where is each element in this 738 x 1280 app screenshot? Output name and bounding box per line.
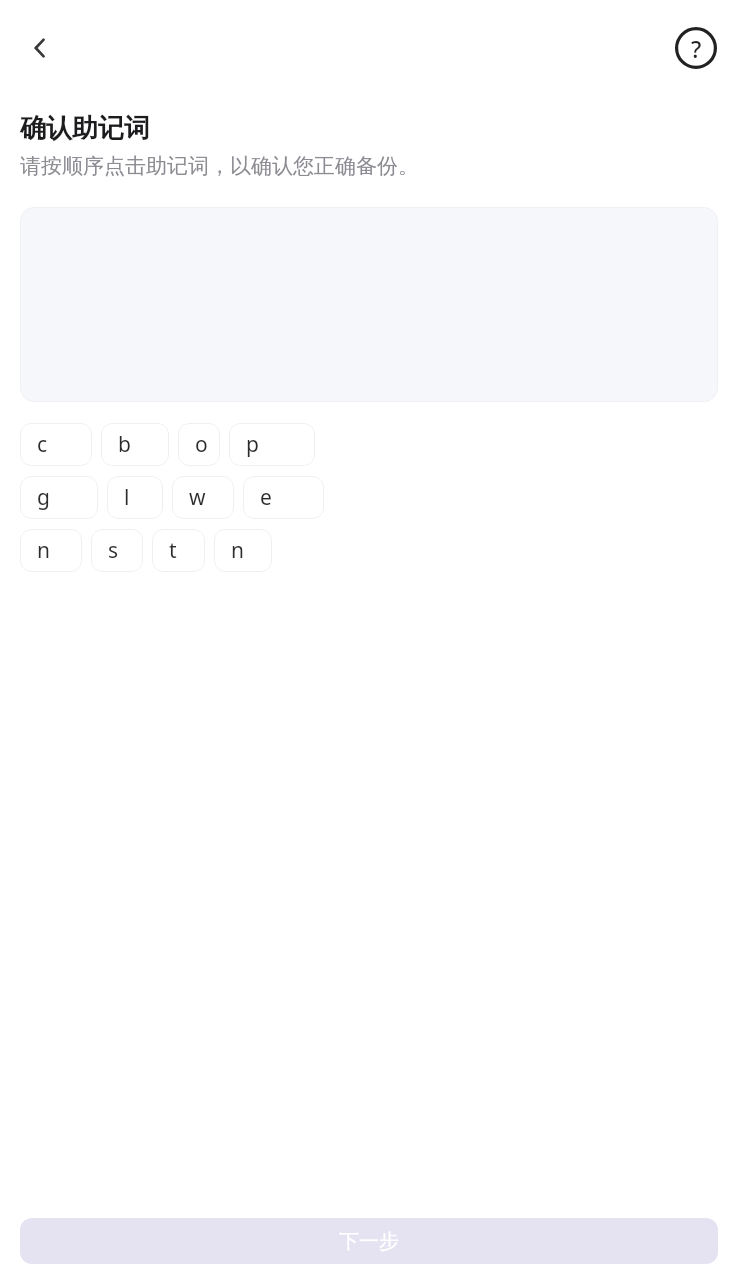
staticText: l [124, 483, 130, 512]
button[interactable]: g [20, 476, 98, 519]
staticText: w [189, 483, 206, 512]
button[interactable]: e [243, 476, 324, 519]
button[interactable]: Help [668, 20, 724, 76]
button[interactable]: l [107, 476, 163, 519]
staticText: n [37, 536, 50, 565]
staticText: t [169, 536, 177, 565]
staticText: 请按顺序点击助记词，以确认您正确备份。 [20, 153, 419, 179]
button[interactable]: s [91, 529, 143, 572]
staticText: p [246, 430, 259, 459]
button[interactable]: Back [8, 16, 72, 80]
staticText: c [37, 430, 48, 459]
staticText: n [231, 536, 244, 565]
button[interactable]: n [20, 529, 82, 572]
button[interactable]: c [20, 423, 92, 466]
button[interactable]: b [101, 423, 169, 466]
button[interactable]: p [229, 423, 315, 466]
staticText: s [108, 536, 119, 565]
staticText: e [260, 483, 272, 512]
staticText: o [195, 430, 208, 459]
staticText: ? [691, 33, 702, 64]
staticText: b [118, 430, 131, 459]
staticText: 下一步 [339, 1229, 399, 1254]
button[interactable]: o [178, 423, 220, 466]
button[interactable]: w [172, 476, 234, 519]
button[interactable]: t [152, 529, 205, 572]
staticText: 确认助记词 [20, 112, 150, 145]
button[interactable]: n [214, 529, 272, 572]
staticText: g [37, 483, 50, 512]
